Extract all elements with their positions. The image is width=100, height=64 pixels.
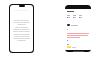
staticText: Lorem ipsum dolor sit amet consectetur a… — [13, 19, 30, 25]
staticText: Sed do eiusmod tempor incididunt ut labo… — [13, 26, 30, 32]
staticText: Nostrud exercitation ullamco laboris nis… — [13, 33, 30, 41]
